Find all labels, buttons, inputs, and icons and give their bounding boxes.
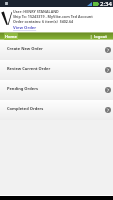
staticText: 2:34 [100,0,112,7]
staticText: logout [94,34,108,39]
button[interactable]: Completed Orders [0,100,113,120]
button[interactable]: logout [94,34,108,39]
staticText: Create New Order [7,46,43,51]
button[interactable]: Create New Order [0,40,113,60]
staticText: Review Current Order [7,66,51,71]
button[interactable]: Home [4,33,18,40]
staticText: Completed Orders [7,106,44,111]
staticText: Order contains: 6 item(s) $402.64 [13,19,74,24]
staticText: User: HENRY STANALAND [13,9,59,14]
staticText: | [90,34,93,39]
staticText: View Order [13,25,37,31]
button[interactable]: View Order [13,25,37,31]
button[interactable]: Review Current Order [0,60,113,80]
staticText: Pending Orders [7,86,38,91]
button[interactable]: Pending Orders [0,80,113,100]
staticText: Home [5,34,17,39]
staticText: Ship To: 15243319 - MyVibe.com Ted Accou… [13,14,93,19]
